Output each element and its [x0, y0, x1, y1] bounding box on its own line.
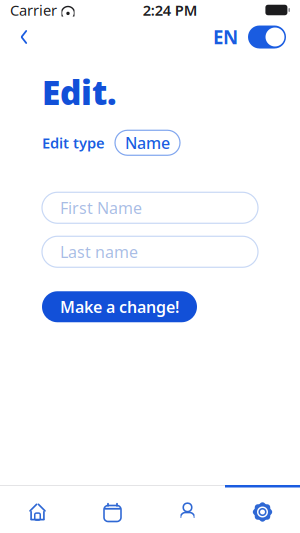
staticText: Name — [125, 132, 170, 153]
staticText: Last name — [60, 241, 138, 262]
button[interactable]: Name — [115, 130, 180, 155]
button[interactable]: Profile — [150, 490, 225, 533]
staticText: Edit. — [42, 70, 117, 114]
button[interactable]: Calendar — [75, 490, 150, 533]
button[interactable]: Language EN — [207, 21, 292, 53]
button[interactable]: Back — [8, 22, 40, 52]
staticText: First Name — [60, 197, 142, 218]
staticText: Make a change! — [60, 296, 179, 317]
button[interactable]: First Name — [42, 192, 258, 223]
staticText: Carrier — [10, 0, 57, 20]
staticText: Edit type — [42, 133, 105, 152]
button[interactable]: Home — [0, 490, 75, 533]
button[interactable]: Settings — [225, 490, 300, 533]
staticText: EN — [213, 25, 238, 49]
button[interactable]: Make a change! — [42, 291, 197, 322]
button[interactable]: Last name — [42, 236, 258, 267]
staticText: 2:24 PM — [143, 0, 198, 20]
